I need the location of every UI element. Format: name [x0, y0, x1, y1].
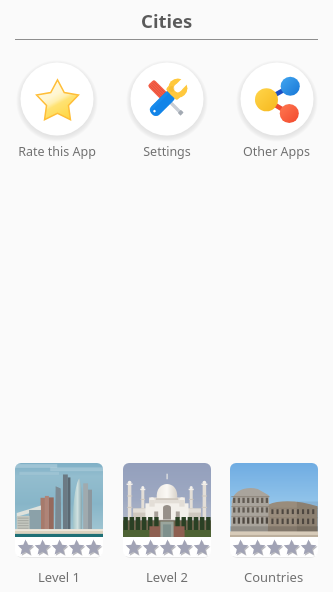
button[interactable]: Countries: [230, 463, 318, 586]
staticText: Cities: [141, 8, 193, 33]
button[interactable]: Settings: [120, 60, 213, 160]
staticText: Other Apps: [243, 143, 310, 160]
staticText: Settings: [143, 143, 191, 160]
staticText: Countries: [244, 568, 304, 586]
staticText: Level 2: [146, 568, 188, 586]
button[interactable]: Level 1: [15, 463, 103, 586]
staticText: Rate this App: [18, 143, 96, 160]
staticText: Level 1: [38, 568, 80, 586]
button[interactable]: Level 2: [123, 463, 211, 586]
button[interactable]: Other Apps: [230, 60, 323, 160]
button[interactable]: Rate this App: [10, 60, 103, 160]
